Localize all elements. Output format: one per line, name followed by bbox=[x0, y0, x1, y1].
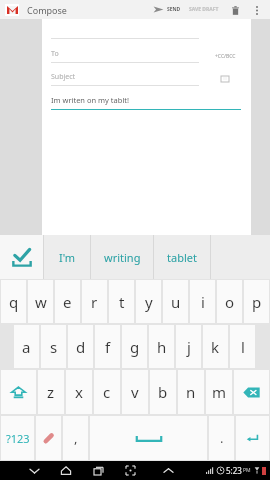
button[interactable]: Gmail bbox=[5, 4, 19, 16]
staticText: r bbox=[91, 292, 98, 312]
button[interactable]: Subject bbox=[51, 72, 199, 86]
staticText: PM bbox=[243, 467, 251, 474]
staticText: a bbox=[22, 337, 31, 357]
staticText: x bbox=[75, 382, 83, 402]
button[interactable]: m bbox=[206, 370, 232, 414]
staticText: n bbox=[186, 382, 196, 402]
button[interactable]: SAVE DRAFT bbox=[189, 6, 219, 13]
staticText: , bbox=[74, 429, 78, 447]
button[interactable]: Accept suggestion bbox=[0, 235, 43, 279]
staticText: d bbox=[76, 337, 86, 357]
staticText: 5:23 bbox=[226, 465, 242, 476]
button[interactable]: More options bbox=[249, 2, 265, 18]
button[interactable]: Recent apps bbox=[88, 461, 108, 480]
staticText: f bbox=[105, 337, 111, 357]
button[interactable]: k bbox=[203, 325, 228, 368]
button[interactable]: b bbox=[150, 370, 176, 414]
button[interactable]: x bbox=[66, 370, 92, 414]
button[interactable]: e bbox=[55, 280, 80, 323]
button[interactable]: a bbox=[14, 325, 39, 368]
staticText: Subject bbox=[51, 72, 76, 82]
staticText: SEND bbox=[167, 6, 181, 13]
button[interactable]: z bbox=[38, 370, 64, 414]
button[interactable]: g bbox=[122, 325, 147, 368]
staticText: l bbox=[241, 337, 245, 357]
staticText: b bbox=[158, 382, 168, 402]
staticText: SAVE DRAFT bbox=[189, 6, 219, 13]
staticText: w bbox=[35, 292, 47, 312]
staticText: ?123 bbox=[6, 431, 30, 446]
button[interactable]: p bbox=[244, 280, 269, 323]
button[interactable]: i bbox=[190, 280, 215, 323]
staticText: i bbox=[201, 292, 205, 312]
button[interactable]: v bbox=[122, 370, 148, 414]
button[interactable]: +CC/BCC bbox=[199, 53, 251, 60]
button[interactable]: Im writen on my tablt! bbox=[51, 95, 241, 110]
staticText: s bbox=[50, 337, 58, 357]
staticText: To bbox=[51, 49, 59, 59]
staticText: e bbox=[63, 292, 72, 312]
button[interactable]: h bbox=[149, 325, 174, 368]
button[interactable]: Backspace bbox=[234, 370, 269, 414]
button[interactable]: SEND bbox=[153, 0, 181, 19]
button[interactable]: Expand bbox=[158, 461, 178, 480]
staticText: z bbox=[47, 382, 55, 402]
button[interactable]: Shift bbox=[1, 370, 36, 414]
button[interactable]: w bbox=[28, 280, 53, 323]
staticText: p bbox=[252, 292, 262, 312]
button[interactable]: ?123 bbox=[1, 416, 34, 460]
button[interactable]: Enter bbox=[236, 416, 269, 460]
button[interactable]: Space bbox=[90, 416, 207, 460]
button[interactable]: l bbox=[230, 325, 255, 368]
button[interactable]: Handwriting bbox=[36, 416, 61, 460]
staticText: v bbox=[131, 382, 139, 402]
button[interactable]: n bbox=[178, 370, 204, 414]
staticText: writing bbox=[104, 250, 141, 265]
staticText: g bbox=[130, 337, 140, 357]
button[interactable]: s bbox=[41, 325, 66, 368]
button[interactable]: j bbox=[176, 325, 201, 368]
staticText: t bbox=[119, 292, 125, 312]
button[interactable]: Back bbox=[24, 461, 44, 480]
button[interactable]: Discard bbox=[227, 2, 243, 18]
staticText: tablet bbox=[167, 250, 197, 265]
staticText: I'm bbox=[59, 250, 76, 265]
button[interactable]: c bbox=[94, 370, 120, 414]
button[interactable]: . bbox=[209, 416, 234, 460]
button[interactable]: Toggle fullscreen bbox=[120, 461, 140, 480]
button[interactable]: Attach bbox=[199, 76, 251, 82]
staticText: Compose bbox=[27, 4, 67, 16]
staticText: o bbox=[225, 292, 235, 312]
button[interactable]: I'm bbox=[44, 235, 90, 279]
button[interactable]: writing bbox=[91, 235, 153, 279]
button[interactable]: o bbox=[217, 280, 242, 323]
staticText: +CC/BCC bbox=[215, 53, 236, 60]
button[interactable]: y bbox=[136, 280, 161, 323]
button[interactable]: q bbox=[1, 280, 26, 323]
button[interactable]: d bbox=[68, 325, 93, 368]
button[interactable]: tablet bbox=[154, 235, 210, 279]
button[interactable]: f bbox=[95, 325, 120, 368]
button[interactable]: u bbox=[163, 280, 188, 323]
staticText: j bbox=[187, 337, 191, 357]
button[interactable]: t bbox=[109, 280, 134, 323]
staticText: k bbox=[211, 337, 220, 357]
staticText: c bbox=[103, 382, 111, 402]
button[interactable]: To bbox=[51, 49, 199, 63]
staticText: . bbox=[220, 429, 224, 447]
staticText: q bbox=[9, 292, 19, 312]
staticText: u bbox=[171, 292, 181, 312]
staticText: h bbox=[157, 337, 167, 357]
staticText: y bbox=[145, 292, 153, 312]
button[interactable]: Home bbox=[56, 461, 76, 480]
staticText: m bbox=[212, 382, 227, 402]
button[interactable]: r bbox=[82, 280, 107, 323]
staticText: Im writen on my tablt! bbox=[51, 95, 130, 105]
button[interactable]: , bbox=[63, 416, 88, 460]
